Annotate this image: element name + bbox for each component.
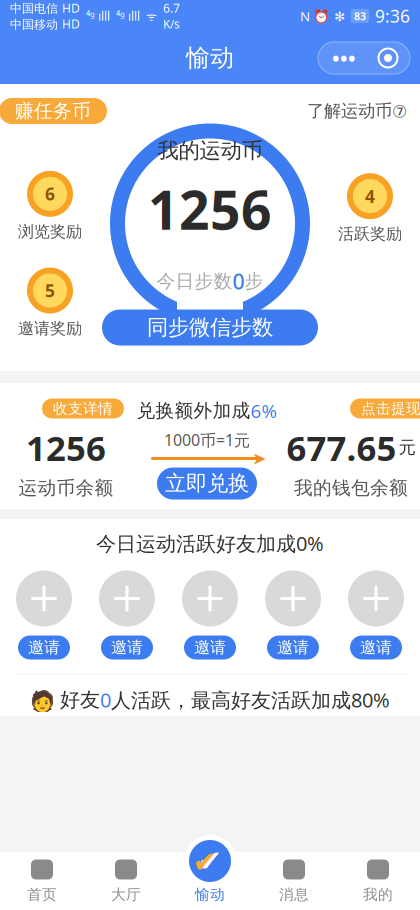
- staticText: 大厅: [111, 885, 141, 903]
- staticText: ✔︎: [197, 844, 222, 878]
- staticText: 立即兑换: [165, 470, 249, 497]
- staticText: 邀请: [277, 638, 309, 657]
- staticText: 83: [354, 9, 366, 23]
- staticText: 邀请: [360, 638, 392, 657]
- staticText: 今日运动活跃好友加成0%: [96, 530, 324, 556]
- staticText: 点击提现: [361, 399, 420, 417]
- staticText: 活跃奖励: [338, 224, 402, 244]
- staticText: •••: [332, 45, 356, 71]
- staticText: 6.7: [163, 0, 180, 16]
- staticText: 677.65: [286, 424, 396, 470]
- staticText: 兑换额外加成: [136, 399, 250, 422]
- staticText: 好友: [60, 687, 100, 712]
- button[interactable]: 收支详情: [42, 398, 124, 418]
- staticText: 我的: [363, 885, 393, 903]
- button[interactable]: 邀请: [101, 635, 153, 659]
- staticText: 赚任务币: [15, 99, 91, 122]
- staticText: 收支详情: [53, 399, 113, 417]
- button[interactable]: 我的: [336, 851, 420, 910]
- button[interactable]: 邀请: [184, 635, 236, 659]
- staticText: 6: [45, 182, 55, 205]
- staticText: 🧑: [30, 686, 60, 713]
- staticText: 元: [398, 437, 415, 458]
- staticText: 中国电信 HD: [10, 0, 80, 16]
- staticText: 0: [232, 267, 244, 295]
- staticText: 愉动: [195, 885, 225, 903]
- staticText: ⁴ᵍ ılll ⁴ᵍ ılll ᯤ: [86, 8, 157, 24]
- staticText: ➤: [252, 449, 267, 468]
- button[interactable]: 了解运动币⑦: [307, 100, 408, 122]
- button[interactable]: 愉动: [168, 851, 252, 910]
- staticText: 邀请奖励: [18, 318, 82, 338]
- staticText: 消息: [279, 885, 309, 903]
- staticText: ✔︎: [192, 845, 217, 879]
- button[interactable]: 大厅: [84, 851, 168, 910]
- staticText: 人活跃，最高好友活跃加成80%: [111, 686, 390, 713]
- staticText: 中国移动 HD: [10, 16, 80, 32]
- staticText: 我的运动币: [157, 137, 262, 164]
- staticText: 9:36: [375, 4, 410, 27]
- staticText: 了解运动币⑦: [307, 100, 408, 122]
- staticText: K/s: [163, 16, 180, 32]
- staticText: 1256: [148, 174, 272, 244]
- staticText: 同步微信步数: [147, 314, 273, 341]
- staticText: 1000币=1元: [164, 429, 250, 450]
- staticText: N ⏰ ✻: [300, 7, 345, 25]
- button[interactable]: 立即兑换: [157, 467, 257, 499]
- staticText: 5: [45, 279, 55, 302]
- staticText: 运动币余额: [18, 477, 113, 499]
- button[interactable]: 赚任务币: [12, 98, 120, 124]
- button[interactable]: 更多: [318, 42, 410, 74]
- staticText: 愉动: [186, 43, 234, 73]
- button[interactable]: 消息: [252, 851, 336, 910]
- button[interactable]: 首页: [0, 851, 84, 910]
- button[interactable]: 邀请: [267, 635, 319, 659]
- staticText: 4: [365, 185, 375, 208]
- button[interactable]: 点击提现: [338, 398, 420, 418]
- staticText: 步: [244, 270, 263, 293]
- staticText: 今日步数: [156, 270, 232, 293]
- staticText: 邀请: [28, 638, 60, 657]
- staticText: 6%: [250, 398, 277, 423]
- staticText: 首页: [27, 885, 57, 903]
- button[interactable]: 同步微信步数: [102, 309, 318, 345]
- staticText: 浏览奖励: [18, 222, 82, 241]
- button[interactable]: 邀请: [350, 635, 402, 659]
- button[interactable]: 愉动: [184, 855, 236, 907]
- button[interactable]: 邀请: [18, 635, 70, 659]
- staticText: 1256: [26, 424, 106, 470]
- staticText: 邀请: [194, 638, 226, 657]
- staticText: 0: [100, 686, 111, 713]
- staticText: 我的钱包余额: [294, 477, 408, 499]
- staticText: 邀请: [111, 638, 143, 657]
